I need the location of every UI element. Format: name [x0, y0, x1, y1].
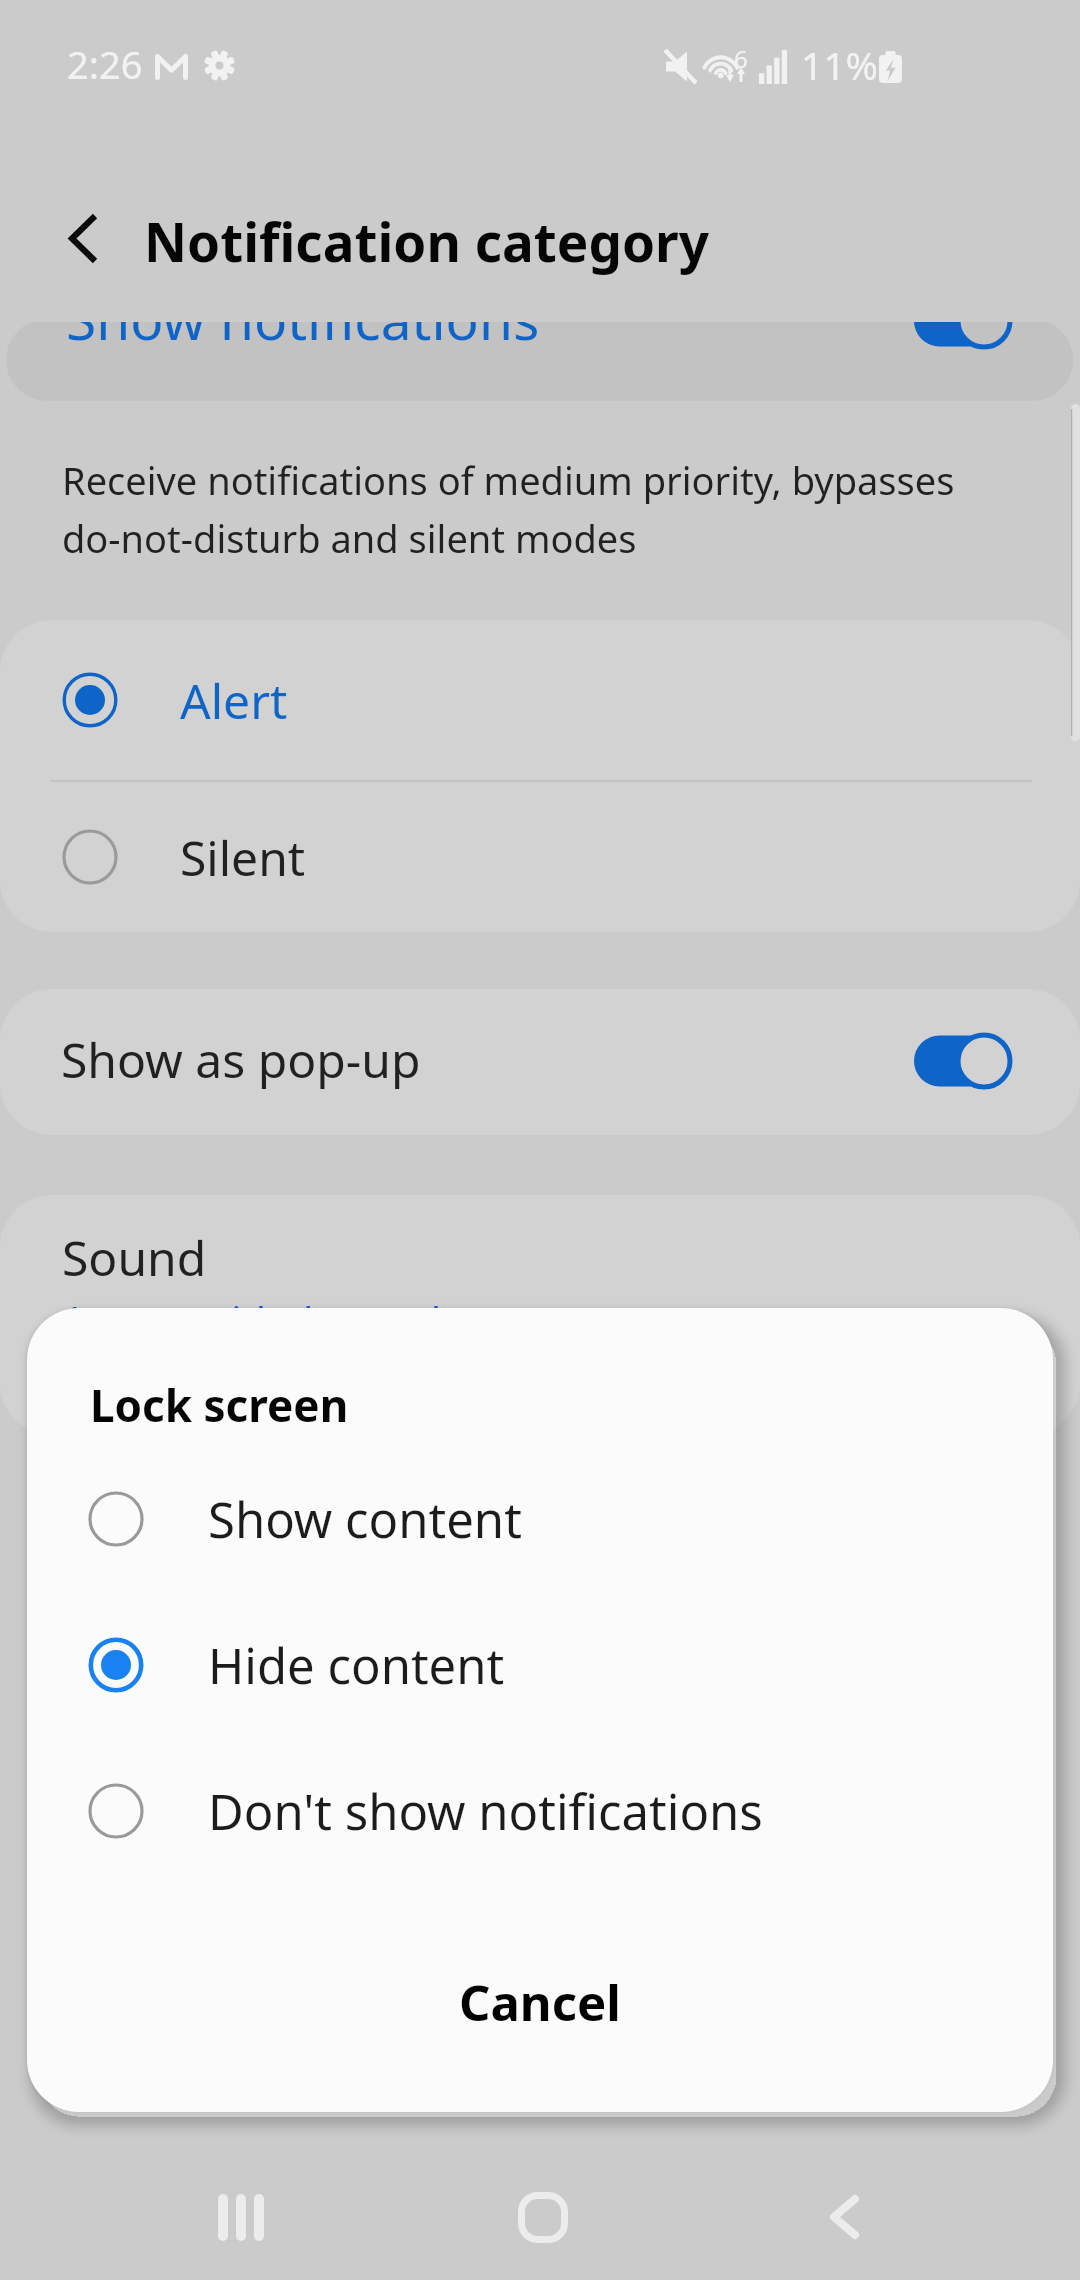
button[interactable]: Silent [0, 782, 1080, 932]
staticText: Show notifications [66, 322, 540, 356]
staticText: Show as pop-up [61, 1027, 421, 1092]
staticText: Cancel [459, 1969, 621, 2036]
button[interactable]: Don't show notifications [27, 1738, 1053, 1884]
staticText: Notification category [144, 205, 709, 277]
button[interactable]: Cancel [27, 1930, 1053, 2074]
staticText: 11% [801, 38, 879, 91]
staticText: Show content [208, 1486, 522, 1553]
staticText: 2:26 [67, 38, 143, 90]
button[interactable]: Show content [27, 1446, 1053, 1592]
button[interactable]: Recents [166, 2168, 316, 2266]
button[interactable]: Navigate up [26, 182, 140, 294]
staticText: App provided sound [62, 1293, 442, 1347]
button[interactable]: Home [468, 2168, 618, 2266]
staticText: Sound [62, 1225, 207, 1290]
button[interactable]: Show notifications [6, 322, 1073, 401]
button[interactable]: Back [769, 2168, 919, 2266]
button[interactable]: Hide content [27, 1592, 1053, 1738]
staticText: 6 [734, 42, 748, 75]
button[interactable]: Toggle [914, 322, 1014, 352]
staticText: Alert [180, 668, 288, 733]
staticText: Hide content [208, 1632, 505, 1699]
button[interactable]: Show as pop-up [0, 989, 1080, 1135]
staticText: Don't show notifications [208, 1778, 763, 1845]
button[interactable]: Sound [0, 1195, 1080, 1435]
button[interactable]: Alert [0, 620, 1080, 780]
staticText: Receive notifications of medium priority… [62, 454, 955, 564]
staticText: Silent [180, 825, 306, 890]
staticText: Lock screen [90, 1375, 349, 1435]
button[interactable]: Toggle [914, 1030, 1014, 1092]
